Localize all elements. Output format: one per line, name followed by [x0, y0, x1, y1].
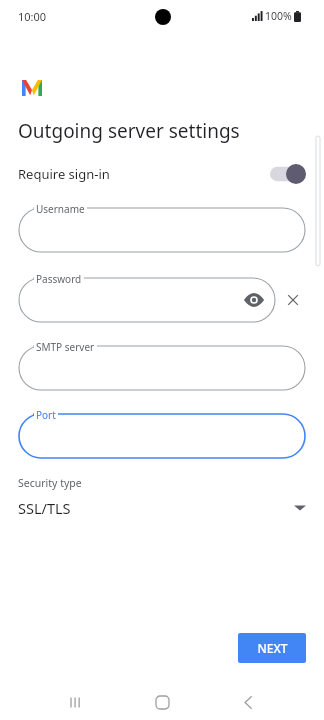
- button[interactable]: Username: [19, 208, 305, 252]
- staticText: Username: [36, 202, 85, 216]
- button[interactable]: Security type: [0, 476, 324, 518]
- staticText: Outgoing server settings: [18, 118, 240, 144]
- button[interactable]: Clear password: [282, 289, 304, 311]
- staticText: Require sign-in: [18, 165, 110, 183]
- staticText: NEXT: [257, 640, 288, 656]
- staticText: 100%: [265, 9, 292, 23]
- button[interactable]: Port: [19, 414, 305, 458]
- button[interactable]: Show password: [243, 289, 265, 311]
- staticText: SSL/TLS: [18, 498, 71, 518]
- staticText: Security type: [18, 476, 82, 490]
- button[interactable]: Password: [19, 278, 275, 322]
- staticText: 10:00: [18, 9, 47, 24]
- staticText: Password: [36, 272, 82, 286]
- button[interactable]: Back: [230, 684, 266, 720]
- staticText: SMTP server: [36, 340, 95, 354]
- button[interactable]: SMTP server: [19, 346, 305, 390]
- button[interactable]: Recent apps: [58, 684, 94, 720]
- button[interactable]: NEXT: [238, 633, 306, 663]
- staticText: Port: [36, 408, 56, 422]
- button[interactable]: Home: [144, 684, 180, 720]
- button[interactable]: Require sign-in: [0, 160, 324, 188]
- button[interactable]: Require sign-in toggle: [270, 164, 306, 184]
